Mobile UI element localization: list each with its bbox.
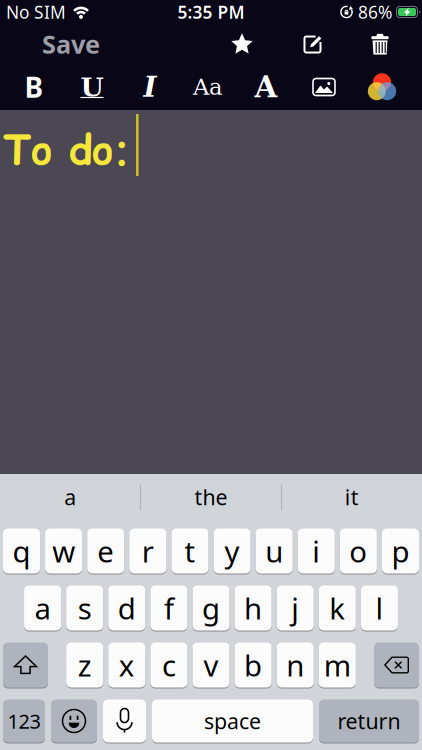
staticText: c [162,645,176,684]
button[interactable]: Underline [63,71,121,103]
staticText: 123 [7,708,40,734]
button[interactable]: q [3,528,40,573]
staticText: m [324,645,351,684]
staticText: a [64,483,76,511]
button[interactable]: d [108,585,145,630]
button[interactable]: b [235,642,272,687]
button[interactable]: f [150,585,187,630]
button[interactable]: Save [0,27,100,61]
button[interactable]: Shift [3,642,48,687]
staticText: v [203,645,218,684]
button[interactable]: j [277,585,314,630]
staticText: B [24,68,43,106]
button[interactable]: Delete [349,24,411,64]
button[interactable]: a [0,483,141,511]
button[interactable]: n [277,642,314,687]
staticText: f [164,588,174,627]
staticText: 86% [358,0,392,23]
button[interactable]: r [129,528,166,573]
staticText: u [265,531,283,570]
staticText: U [80,71,103,103]
staticText: d [118,588,136,627]
staticText: y [224,531,239,570]
staticText: No SIM [6,0,66,23]
button[interactable]: g [192,585,229,630]
button[interactable]: return [319,699,419,742]
staticText: Save [42,27,100,61]
button[interactable]: Dictate [103,699,146,742]
staticText: l [375,588,383,627]
staticText: w [52,531,75,570]
button[interactable]: Favorite [207,24,277,64]
staticText: a [35,588,51,627]
staticText: t [184,531,195,570]
button[interactable]: New note [277,24,349,64]
button[interactable]: Numbers [3,699,45,742]
button[interactable]: l [361,585,398,630]
staticText: g [202,588,220,627]
staticText: 5:35 PM [177,0,244,23]
button[interactable]: z [66,642,103,687]
staticText: Aa [193,74,223,100]
button[interactable]: Text size [179,74,237,100]
staticText: return [337,707,400,735]
button[interactable]: space [152,699,313,742]
button[interactable]: u [256,528,293,573]
staticText: o [349,531,367,570]
button[interactable]: w [45,528,82,573]
staticText: s [78,588,92,627]
staticText: h [244,588,262,627]
button[interactable]: t [171,528,208,573]
button[interactable]: Emoji [51,699,97,742]
button[interactable]: e [87,528,124,573]
button[interactable]: c [150,642,187,687]
button[interactable]: it [281,483,422,511]
button[interactable]: m [319,642,356,687]
button[interactable]: y [213,528,251,573]
staticText: j [291,588,299,627]
staticText: it [345,483,359,511]
staticText: p [391,531,409,570]
button[interactable]: a [24,585,61,630]
staticText: z [78,645,92,684]
staticText: A [254,70,277,104]
staticText: the [194,483,227,511]
staticText: n [286,645,304,684]
staticText: I [143,71,156,103]
staticText: q [12,531,30,570]
staticText: space [204,707,261,735]
button[interactable]: p [382,528,419,573]
button[interactable]: Text color [353,73,411,101]
button[interactable]: k [319,585,356,630]
button[interactable]: Insert photo [295,77,353,97]
staticText: b [244,645,262,684]
button[interactable]: Delete [374,642,419,687]
staticText: To do: [3,122,130,178]
button[interactable]: x [108,642,145,687]
staticText: x [119,645,135,684]
button[interactable]: Italic [121,71,179,103]
button[interactable]: o [340,528,377,573]
button[interactable]: the [141,483,281,511]
button[interactable]: v [192,642,230,687]
staticText: e [97,531,114,570]
button[interactable]: h [234,585,272,630]
staticText: i [312,531,320,570]
staticText: r [142,531,154,570]
button[interactable]: s [66,585,103,630]
button[interactable]: i [298,528,335,573]
staticText: k [329,588,345,627]
button[interactable]: Bold [5,68,63,106]
button[interactable]: Font [237,70,295,104]
